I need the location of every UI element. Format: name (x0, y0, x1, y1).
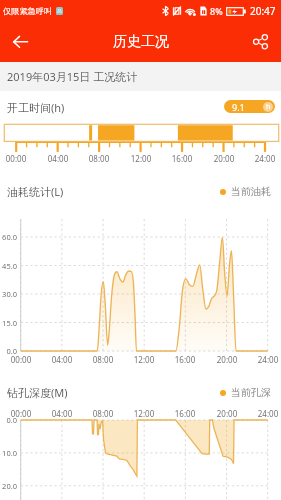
staticText: 16:00 (166, 153, 198, 164)
staticText: 12:00 (125, 153, 157, 164)
staticText: 00:00 (5, 354, 37, 365)
staticText: 16:00 (169, 354, 201, 365)
staticText: 当前孔深 (231, 386, 271, 399)
staticText: 油耗统计(L) (7, 184, 64, 199)
staticText: 30.0 (0, 289, 17, 299)
staticText: 24:00 (249, 153, 281, 164)
staticText: 08:00 (83, 153, 115, 164)
staticText: 45.0 (0, 261, 17, 271)
staticText: 仅限紧急呼叫 (3, 6, 53, 16)
staticText: 10.0 (0, 448, 17, 458)
staticText: 钻孔深度(M) (7, 385, 68, 400)
button[interactable]: Share (240, 21, 281, 62)
staticText: 20:00 (211, 408, 243, 419)
staticText: 00:00 (0, 153, 32, 164)
staticText: 04:00 (42, 153, 74, 164)
staticText: 2019年03月15日 工况统计 (7, 69, 138, 84)
staticText: h (266, 102, 271, 112)
staticText: 00:00 (5, 408, 37, 419)
staticText: 08:00 (87, 408, 119, 419)
button[interactable]: 当前油耗 (220, 185, 271, 198)
staticText: 开工时间(h) (7, 100, 65, 115)
staticText: 20:00 (208, 153, 240, 164)
staticText: 04:00 (46, 408, 78, 419)
staticText: 04:00 (46, 354, 78, 365)
staticText: 24:00 (252, 408, 281, 419)
staticText: 20:47 (250, 4, 276, 18)
staticText: 0.0 (0, 346, 17, 356)
staticText: 12:00 (128, 354, 160, 365)
button[interactable]: 9.1 (224, 100, 275, 113)
staticText: 60.0 (0, 232, 17, 242)
staticText: 08:00 (87, 354, 119, 365)
staticText: 12:00 (128, 408, 160, 419)
button[interactable]: 当前孔深 (220, 386, 271, 399)
staticText: 8% (210, 5, 223, 17)
staticText: 9.1 (232, 101, 245, 113)
staticText: 当前油耗 (231, 185, 271, 198)
button[interactable]: Back (0, 21, 41, 62)
staticText: 20:00 (211, 354, 243, 365)
staticText: 20.0 (0, 481, 17, 491)
staticText: 15.0 (0, 318, 17, 328)
staticText: 0.0 (0, 415, 17, 425)
staticText: 16:00 (169, 408, 201, 419)
staticText: 历史工况 (113, 33, 169, 51)
staticText: 24:00 (252, 354, 281, 365)
